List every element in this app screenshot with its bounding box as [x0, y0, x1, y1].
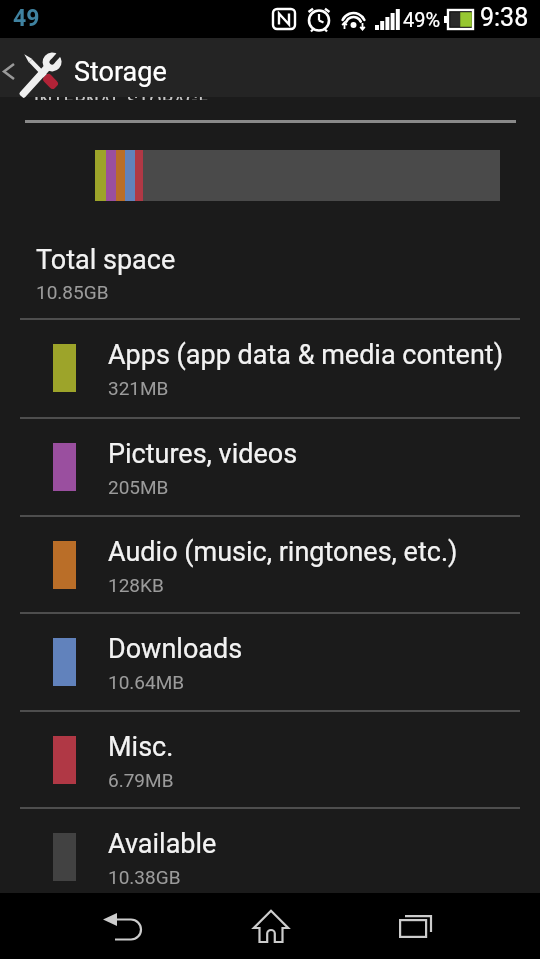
staticText: Apps (app data & media content) — [108, 339, 504, 371]
staticText: Downloads — [108, 633, 243, 665]
button[interactable]: Misc. — [0, 712, 540, 807]
button[interactable] — [233, 893, 308, 959]
staticText: Audio (music, ringtones, etc.) — [108, 536, 458, 568]
staticText: 49% — [403, 8, 441, 31]
staticText: Available — [108, 828, 217, 860]
button[interactable]: Audio (music, ringtones, etc.) — [0, 517, 540, 612]
staticText: 10.64MB — [108, 671, 185, 693]
staticText: 128KB — [108, 574, 164, 596]
button[interactable]: Pictures, videos — [0, 419, 540, 514]
staticText: 205MB — [108, 476, 169, 498]
staticText: 10.85GB — [36, 281, 109, 303]
staticText: Misc. — [108, 731, 174, 763]
staticText: INTERNAL STORAGE — [34, 97, 210, 100]
staticText: Total space — [36, 244, 176, 276]
staticText: 321MB — [108, 377, 169, 399]
staticText: 10.38GB — [108, 866, 181, 888]
staticText: Pictures, videos — [108, 438, 298, 470]
button[interactable] — [0, 38, 70, 97]
button[interactable]: Downloads — [0, 614, 540, 709]
staticText: 6.79MB — [108, 769, 174, 791]
staticText: 49 — [13, 5, 40, 32]
staticText: 9:38 — [480, 3, 529, 32]
button[interactable] — [378, 893, 453, 959]
button[interactable]: Available — [0, 809, 540, 904]
button[interactable]: Apps (app data & media content) — [0, 320, 540, 415]
button[interactable] — [85, 893, 160, 959]
button[interactable]: Total space — [0, 228, 540, 318]
staticText: Storage — [74, 56, 167, 88]
